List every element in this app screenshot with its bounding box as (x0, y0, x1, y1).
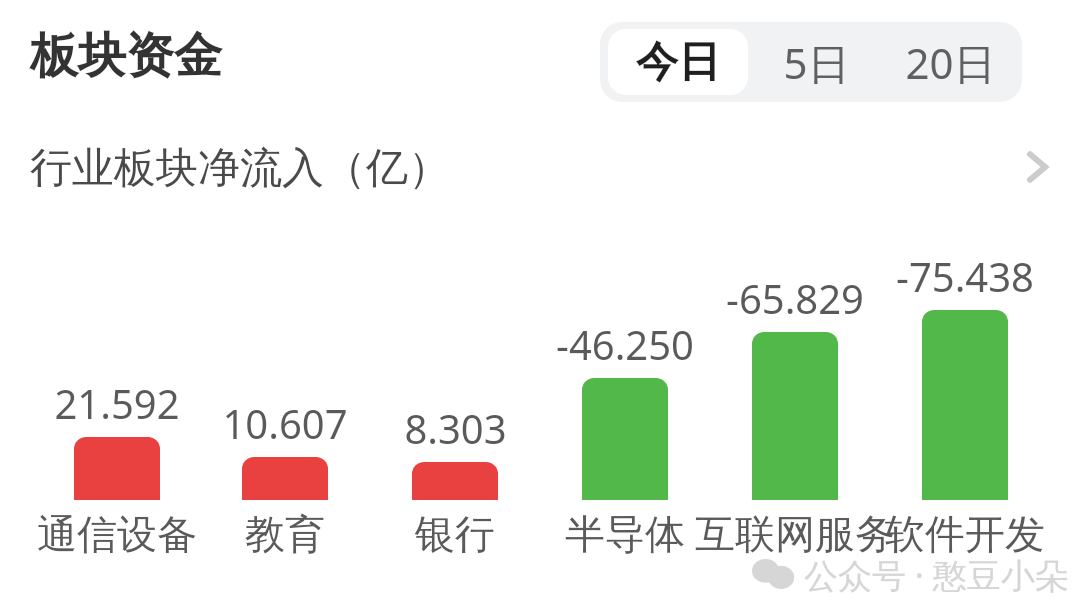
button[interactable]: 更多 (1008, 138, 1066, 196)
staticText: 20日 (905, 34, 996, 91)
button[interactable]: 教育 (165, 506, 405, 562)
button[interactable]: 5日 (752, 29, 880, 95)
staticText: 半导体 (565, 509, 685, 559)
staticText: 通信设备 (37, 509, 197, 559)
staticText: 公众号 · 憨豆小朵 (804, 552, 1069, 596)
staticText: 21.592 (54, 376, 180, 430)
staticText: 互联网服务 (695, 509, 895, 559)
staticText: 今日 (636, 36, 720, 89)
staticText: 软件开发 (885, 509, 1045, 559)
staticText: 板块资金 (30, 26, 222, 86)
button[interactable]: 软件开发 (845, 506, 1080, 562)
staticText: 教育 (245, 509, 325, 559)
staticText: 行业板块净流入（亿） (30, 142, 450, 195)
staticText: -75.438 (896, 249, 1034, 303)
button[interactable]: 银行 (335, 506, 575, 562)
staticText: -65.829 (726, 271, 864, 325)
staticText: 5日 (783, 34, 850, 91)
staticText: -46.250 (556, 317, 694, 371)
button[interactable]: 互联网服务 (675, 506, 915, 562)
staticText: 银行 (415, 509, 495, 559)
button[interactable]: 20日 (884, 29, 1016, 95)
staticText: 8.303 (404, 401, 507, 455)
button[interactable]: 行业板块净流入（亿） (30, 136, 1050, 200)
button[interactable]: 半导体 (505, 506, 745, 562)
button[interactable]: 通信设备 (0, 506, 237, 562)
button[interactable]: 今日 (608, 29, 748, 95)
staticText: 10.607 (222, 396, 348, 450)
